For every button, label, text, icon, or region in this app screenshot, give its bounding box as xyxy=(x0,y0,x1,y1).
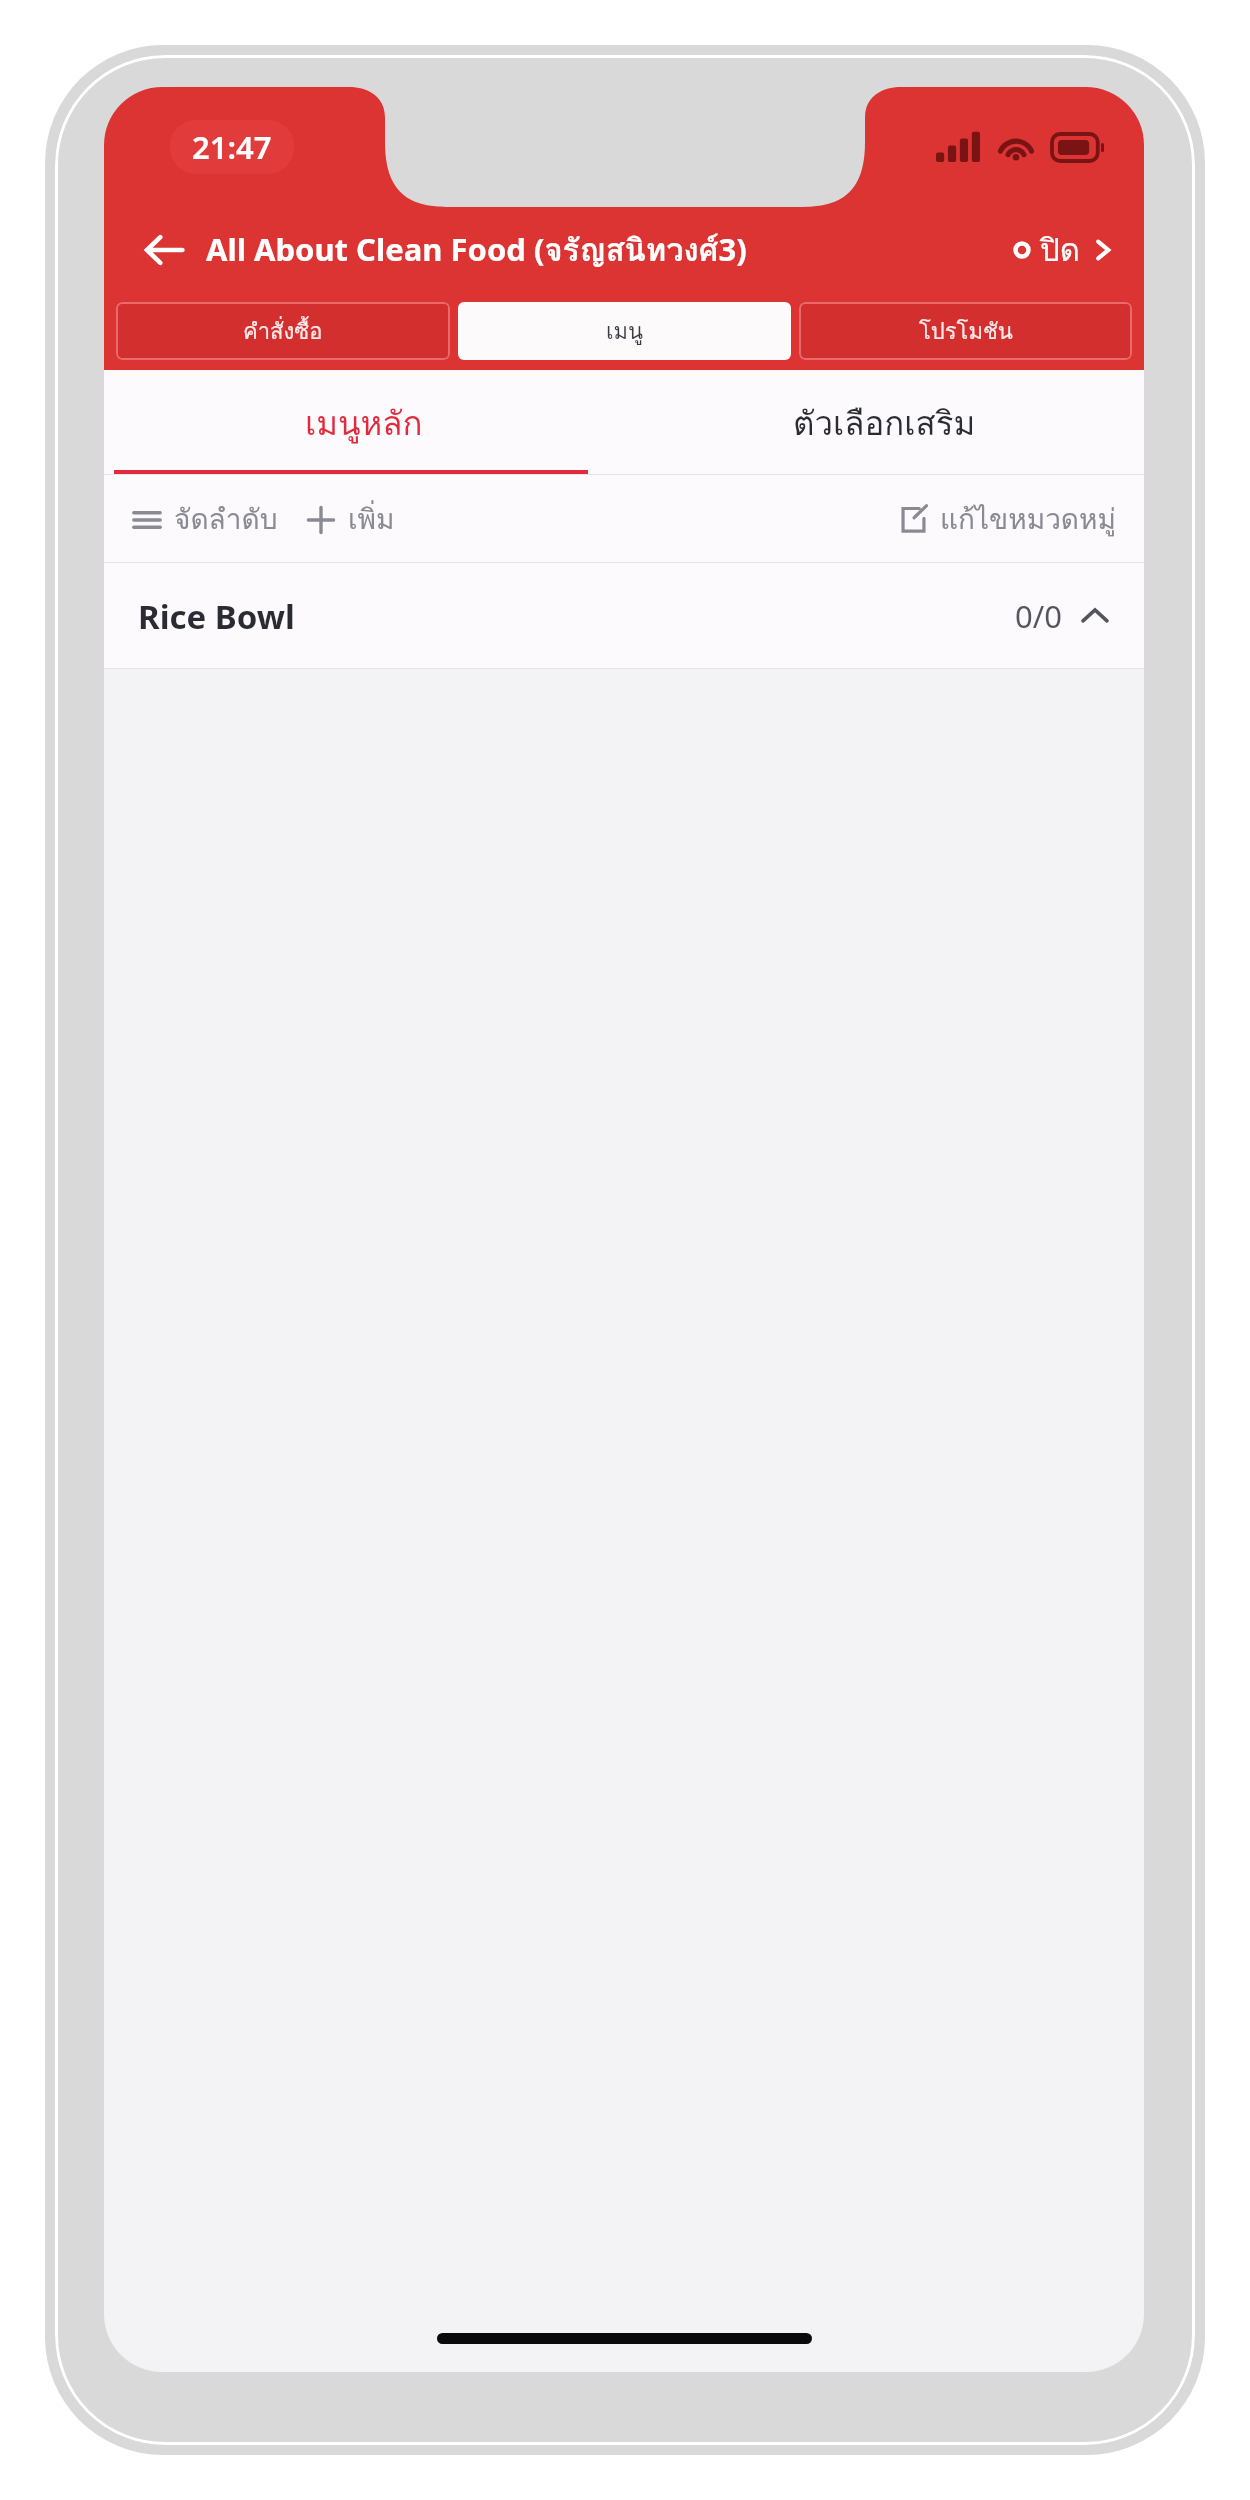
staticText: เมนู xyxy=(606,314,644,349)
button[interactable]: จัดลำดับ xyxy=(130,489,280,550)
staticText: 21:47 xyxy=(192,126,272,168)
staticText: เพิ่ม xyxy=(348,497,395,542)
other: Cellular signal xyxy=(936,132,980,162)
button[interactable]: แก้ไขหมวดหมู่ xyxy=(897,489,1118,550)
staticText: All About Clean Food (จรัญสนิทวงศ์3) xyxy=(206,225,747,274)
button[interactable]: โปรโมชัน xyxy=(799,302,1132,360)
button[interactable]: คำสั่งซื้อ xyxy=(116,302,450,360)
staticText: โปรโมชัน xyxy=(919,314,1013,349)
staticText: 0/0 xyxy=(1015,595,1062,637)
staticText: เมนูหลัก xyxy=(305,397,423,449)
button[interactable]: เพิ่ม xyxy=(304,489,397,550)
other: Battery xyxy=(1052,134,1104,161)
staticText: ตัวเลือกเสริม xyxy=(793,397,976,449)
button[interactable]: เมนู xyxy=(458,302,791,360)
staticText: คำสั่งซื้อ xyxy=(243,314,323,349)
staticText: ปิด xyxy=(1040,225,1080,274)
staticText: Rice Bowl xyxy=(138,594,295,639)
button[interactable]: Back xyxy=(128,214,200,286)
other: Wi-Fi xyxy=(996,132,1036,162)
button[interactable]: ตัวเลือกเสริม xyxy=(624,370,1144,475)
button[interactable]: Rice Bowl xyxy=(104,563,1144,669)
staticText: แก้ไขหมวดหมู่ xyxy=(940,497,1116,542)
button[interactable]: เมนูหลัก xyxy=(104,370,624,475)
staticText: จัดลำดับ xyxy=(174,497,278,542)
button[interactable]: ปิด xyxy=(1008,217,1120,282)
